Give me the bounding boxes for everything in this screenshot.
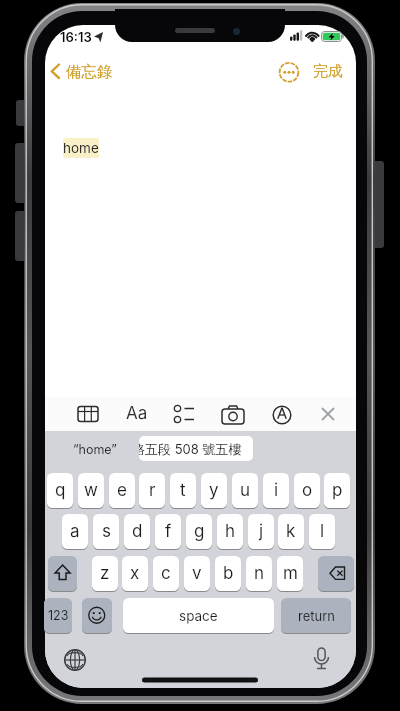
button[interactable]: f [155, 514, 181, 549]
button[interactable] [271, 403, 293, 425]
button[interactable]: 123 [44, 598, 72, 633]
button[interactable]: h [217, 514, 243, 549]
staticText: q [55, 480, 66, 501]
staticText: return [298, 608, 335, 624]
button[interactable]: Aa [126, 403, 148, 424]
staticText: g [194, 521, 205, 542]
button[interactable] [48, 60, 66, 84]
staticText: 完成 [313, 62, 343, 81]
button[interactable]: j [248, 514, 274, 549]
staticText: t [180, 480, 186, 501]
button[interactable]: o [294, 473, 320, 508]
button[interactable]: z [92, 556, 118, 591]
button[interactable]: s [93, 514, 119, 549]
staticText: 16:13 [60, 29, 92, 43]
staticText: z [100, 563, 110, 584]
button[interactable]: return [281, 598, 351, 633]
button[interactable]: v [184, 556, 210, 591]
button[interactable]: t [170, 473, 196, 508]
button[interactable]: 完成 [313, 62, 343, 81]
button[interactable]: e [109, 473, 135, 508]
button[interactable]: “home” [60, 437, 130, 461]
button[interactable]: c [153, 556, 179, 591]
staticText: m [283, 563, 298, 584]
staticText: Aa [126, 403, 148, 424]
staticText: a [70, 521, 80, 542]
staticText: 123 [48, 608, 69, 623]
button[interactable]: space [123, 598, 274, 633]
button[interactable] [48, 556, 77, 591]
staticText: c [161, 563, 171, 584]
button[interactable]: g [186, 514, 212, 549]
staticText: i [274, 480, 279, 501]
staticText: d [132, 521, 143, 542]
staticText: “home” [73, 442, 117, 457]
staticText: x [130, 563, 140, 584]
button[interactable]: u [232, 473, 258, 508]
button[interactable]: k [278, 514, 304, 549]
button[interactable] [220, 403, 246, 425]
button[interactable]: x [122, 556, 148, 591]
button[interactable]: 備忘錄 [66, 62, 113, 82]
button[interactable]: 路五段 508 號五樓 [139, 436, 253, 461]
button[interactable]: q [47, 473, 73, 508]
button[interactable]: a [62, 514, 88, 549]
button[interactable] [317, 403, 339, 425]
staticText: b [223, 563, 234, 584]
staticText: s [102, 521, 111, 542]
button[interactable] [82, 598, 112, 633]
button[interactable]: r [139, 473, 165, 508]
staticText: j [259, 521, 264, 542]
staticText: e [117, 480, 127, 501]
button[interactable]: y [201, 473, 227, 508]
button[interactable]: m [277, 556, 303, 591]
staticText: o [302, 480, 313, 501]
staticText: n [254, 563, 265, 584]
button[interactable]: i [263, 473, 289, 508]
button[interactable]: p [324, 473, 350, 508]
staticText: k [286, 521, 296, 542]
button[interactable] [310, 646, 334, 672]
button[interactable]: l [309, 514, 335, 549]
button[interactable] [76, 403, 100, 425]
staticText: w [84, 480, 98, 501]
button[interactable]: w [78, 473, 104, 508]
staticText: p [332, 480, 343, 501]
button[interactable]: d [124, 514, 150, 549]
staticText: f [165, 521, 172, 542]
staticText: y [209, 480, 219, 501]
button[interactable] [318, 556, 354, 591]
staticText: v [192, 563, 202, 584]
staticText: r [149, 480, 156, 501]
staticText: space [179, 608, 218, 624]
button[interactable] [279, 62, 299, 82]
button[interactable] [63, 648, 87, 672]
staticText: 備忘錄 [66, 62, 113, 82]
staticText: home [63, 140, 99, 156]
button[interactable]: b [215, 556, 241, 591]
button[interactable] [172, 403, 196, 425]
button[interactable]: n [246, 556, 272, 591]
staticText: l [320, 521, 325, 542]
staticText: 路五段 508 號五樓 [139, 441, 242, 457]
staticText: h [225, 521, 236, 542]
staticText: u [240, 480, 251, 501]
